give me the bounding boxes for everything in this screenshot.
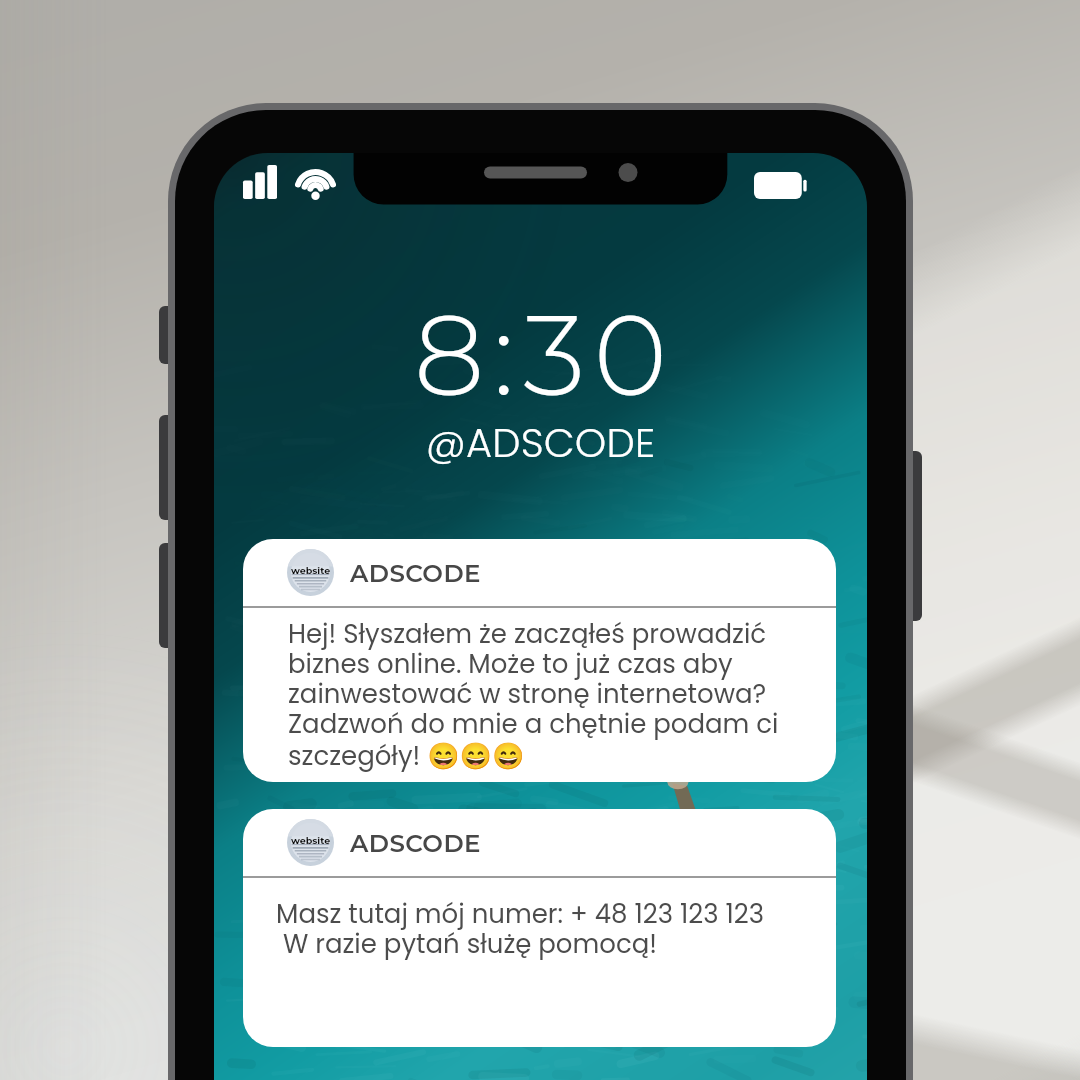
other: Cellular signal bbox=[243, 165, 277, 199]
staticText: ADSCODE bbox=[350, 558, 481, 588]
staticText: Hej! Słyszałem że zacząłeś prowadzić biz… bbox=[288, 616, 779, 774]
staticText: Masz tutaj mój numer: + 48 123 123 123 W… bbox=[276, 896, 765, 962]
other: Wi-Fi bbox=[295, 169, 336, 200]
staticText: website bbox=[291, 565, 331, 577]
staticText: @ADSCODE bbox=[214, 415, 867, 471]
staticText: 8:30 bbox=[218, 287, 867, 424]
staticText: website bbox=[291, 835, 331, 847]
other: Battery full bbox=[754, 172, 808, 199]
button[interactable]: website bbox=[243, 809, 836, 1047]
staticText: ADSCODE bbox=[350, 828, 481, 858]
button[interactable]: website bbox=[243, 539, 836, 782]
